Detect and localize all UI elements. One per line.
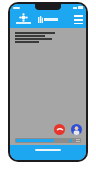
- button[interactable]: Home logo: [13, 14, 33, 24]
- button[interactable]: Menu: [73, 15, 83, 24]
- button[interactable]: End call: [54, 124, 65, 135]
- button[interactable]: Brand logo: [38, 16, 58, 23]
- button[interactable]: [15, 138, 81, 143]
- button[interactable]: Contact avatar: [71, 124, 82, 135]
